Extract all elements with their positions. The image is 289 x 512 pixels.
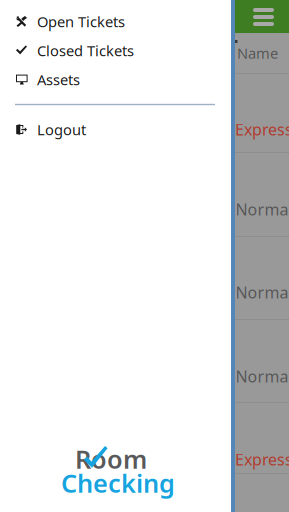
staticText: Open Tickets <box>37 12 125 31</box>
staticText: Express <box>235 119 289 140</box>
button[interactable]: Closed Tickets <box>0 36 231 65</box>
button[interactable]: Assets <box>0 65 231 94</box>
button[interactable]: Normal <box>0 153 289 237</box>
staticText: Name <box>237 43 278 63</box>
staticText: Checking <box>61 466 175 500</box>
staticText: Normal <box>235 366 289 387</box>
button[interactable]: Normal <box>0 237 289 320</box>
staticText: Normal <box>235 282 289 303</box>
staticText: Logout <box>37 120 86 139</box>
button[interactable]: Express <box>0 74 289 153</box>
button[interactable]: Menu <box>242 0 285 33</box>
staticText: Normal <box>235 199 289 220</box>
staticText: Room <box>75 442 147 476</box>
button[interactable]: Open Tickets <box>0 7 231 36</box>
staticText: Closed Tickets <box>37 41 134 60</box>
staticText: Assets <box>37 70 80 89</box>
staticText: Express <box>235 449 289 470</box>
button[interactable]: Normal <box>0 320 289 403</box>
button[interactable]: Express <box>0 403 289 474</box>
button[interactable]: Logout <box>0 115 231 144</box>
